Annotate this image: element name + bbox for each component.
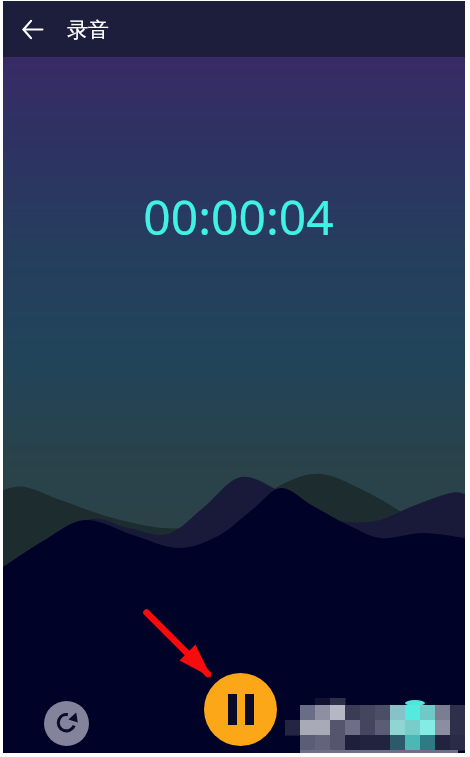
button[interactable]: Restart recording	[44, 701, 89, 746]
button[interactable]: Pause recording	[204, 673, 277, 746]
staticText: 00:00:04	[143, 184, 334, 249]
staticText: 录音	[67, 17, 109, 43]
button[interactable]: Back	[13, 10, 51, 48]
